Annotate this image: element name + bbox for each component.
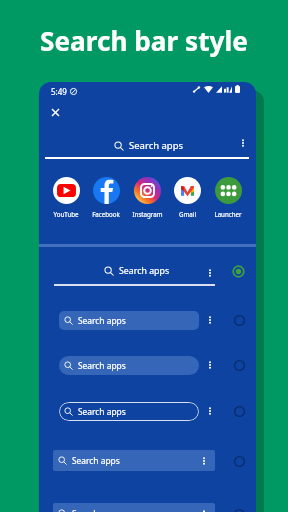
staticText: Gmail	[179, 210, 196, 218]
button[interactable]: Launcher	[208, 177, 248, 218]
staticText: Search apps	[72, 508, 120, 512]
staticText: Search apps	[78, 360, 126, 371]
staticText: Search apps	[72, 455, 120, 466]
staticText: Search apps	[78, 406, 126, 417]
button[interactable]: Search apps	[59, 356, 199, 375]
button[interactable]: Search apps	[59, 311, 199, 330]
button[interactable]: Instagram	[127, 177, 167, 218]
staticText: Search apps	[119, 265, 170, 277]
button[interactable]: Select this style	[229, 310, 249, 330]
staticText: YouTube	[53, 210, 79, 218]
button[interactable]: Gmail	[167, 177, 207, 218]
staticText: Search bar style	[40, 23, 248, 59]
staticText: 5:49	[51, 86, 67, 97]
button[interactable]: Close	[43, 100, 67, 124]
button[interactable]: Search apps	[53, 450, 215, 471]
button[interactable]: Select this style	[229, 262, 247, 280]
button[interactable]: Select this style	[229, 355, 249, 375]
button[interactable]: Select this style	[229, 451, 249, 471]
button[interactable]: More options	[233, 133, 253, 153]
button[interactable]: Search apps	[53, 503, 215, 512]
button[interactable]: Search apps	[59, 402, 199, 421]
button[interactable]: More options	[200, 355, 220, 375]
button[interactable]: YouTube	[46, 177, 86, 218]
staticText: Search apps	[129, 139, 184, 152]
staticText: Search apps	[78, 315, 126, 326]
button[interactable]: More options	[200, 401, 220, 421]
button[interactable]: Facebook	[86, 177, 126, 218]
staticText: Launcher	[214, 210, 242, 218]
staticText: Instagram	[132, 210, 163, 218]
button[interactable]: Select this style	[229, 504, 249, 512]
staticText: Facebook	[92, 210, 120, 218]
button[interactable]: More options	[200, 310, 220, 330]
button[interactable]: More options	[200, 263, 219, 282]
button[interactable]: Select this style	[229, 401, 249, 421]
